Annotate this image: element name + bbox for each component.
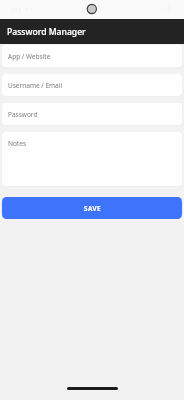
staticText: Notes [8,139,26,148]
staticText: Password [8,110,38,119]
button[interactable]: App / Website [2,45,182,67]
staticText: App / Website [8,52,51,61]
button[interactable]: Password [2,103,182,125]
button[interactable]: SAVE [2,197,182,219]
staticText: Username / Email [8,81,63,90]
button[interactable]: Notes [2,132,182,186]
staticText: SAVE [84,204,101,213]
staticText: Password Manager [7,26,86,38]
button[interactable]: Username / Email [2,74,182,96]
